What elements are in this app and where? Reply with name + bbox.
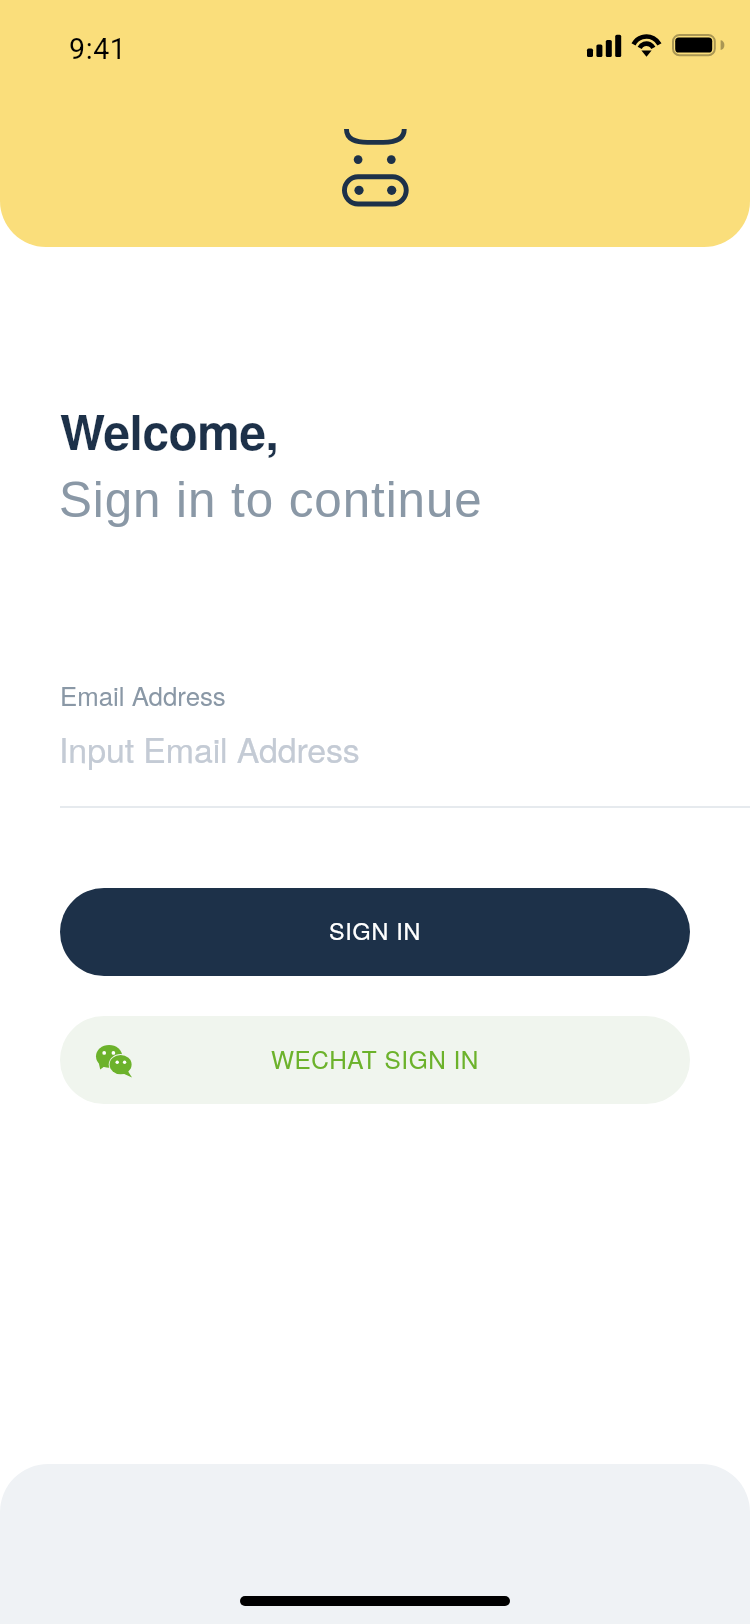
staticText: Email Address <box>60 676 226 713</box>
other: App logo <box>342 129 410 208</box>
other: Battery <box>672 34 721 57</box>
staticText: Welcome, <box>60 396 279 464</box>
button[interactable]: Email Address <box>60 670 750 808</box>
other: Wi-Fi <box>631 34 662 57</box>
staticText: Sign in to continue <box>59 472 483 527</box>
other: Cellular signal <box>587 34 622 57</box>
button[interactable]: SIGN IN <box>60 888 690 976</box>
staticText: SIGN IN <box>329 913 422 946</box>
staticText: WECHAT SIGN IN <box>271 1041 479 1076</box>
staticText: Input Email Address <box>59 724 360 773</box>
other: WeChat <box>96 1045 132 1075</box>
button[interactable]: WECHAT SIGN IN <box>60 1016 690 1104</box>
staticText: 9:41 <box>69 32 127 66</box>
